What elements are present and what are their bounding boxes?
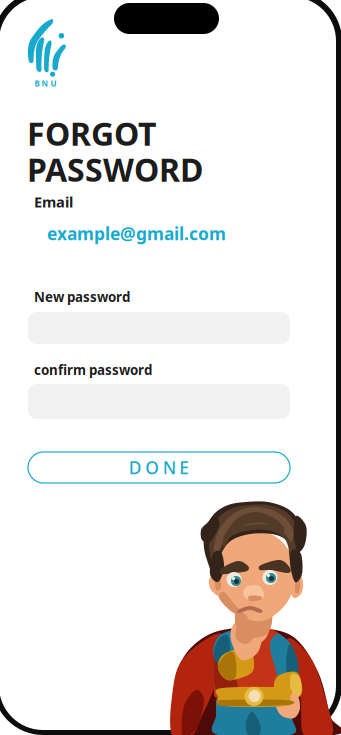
staticText: B N U	[34, 78, 56, 89]
staticText: DONE	[129, 456, 189, 479]
staticText: Email	[34, 192, 73, 211]
staticText: PASSWORD	[27, 148, 203, 190]
staticText: FORGOT	[27, 112, 156, 154]
staticText: confirm password	[34, 361, 152, 379]
staticText: example@gmail.com	[47, 222, 226, 245]
staticText: New password	[34, 288, 130, 306]
button[interactable]: DONE	[28, 452, 290, 483]
